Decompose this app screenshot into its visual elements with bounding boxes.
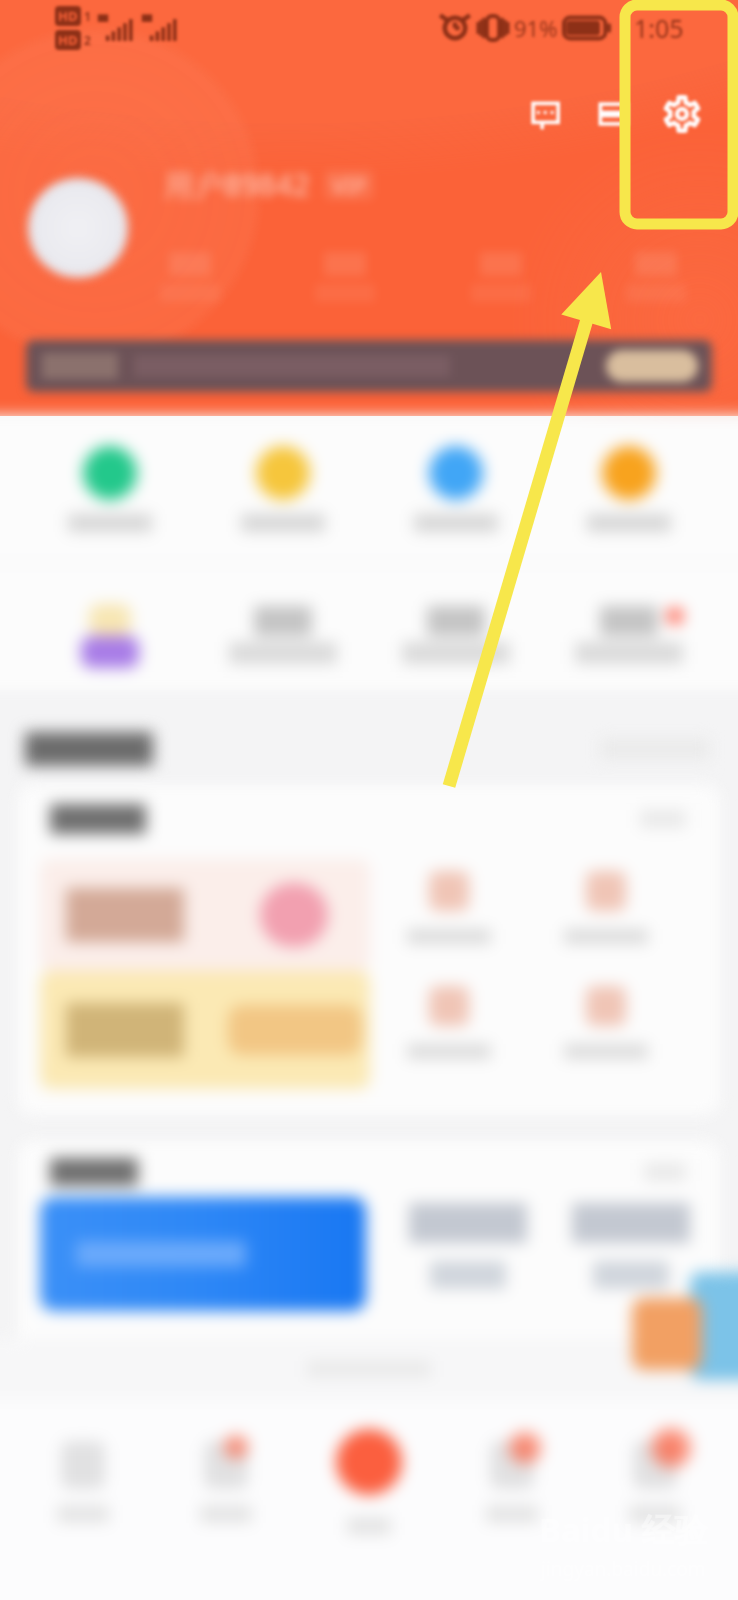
button[interactable] [370,986,527,1059]
button[interactable]: Settings [648,80,716,148]
staticText: 2 [84,32,91,48]
button[interactable] [40,971,370,1089]
staticText: VIP [332,170,366,200]
button[interactable] [196,416,369,562]
button[interactable]: Customer service [632,1298,702,1370]
button[interactable] [542,580,715,690]
button[interactable] [148,252,232,302]
staticText: 1:05 [634,11,684,45]
button[interactable] [459,252,543,302]
button[interactable]: Tab [154,1400,297,1600]
button[interactable]: Orders [580,80,648,148]
button[interactable] [196,580,369,690]
button[interactable]: Assistant [690,1272,738,1380]
button[interactable] [40,859,370,971]
button[interactable] [527,986,684,1059]
button[interactable] [369,416,542,562]
button[interactable] [527,871,684,944]
button[interactable] [23,416,196,562]
staticText: HD [58,31,78,49]
button[interactable] [23,580,196,690]
button[interactable]: Tab [583,1400,726,1600]
staticText: 1 [84,8,91,24]
staticText: 用户89842 [164,164,310,205]
button[interactable] [40,1197,366,1311]
staticText: 91% [514,13,558,43]
button[interactable]: Tab [12,1400,154,1600]
button[interactable] [542,416,715,562]
button[interactable] [28,178,128,278]
staticText: HD [58,7,78,25]
button[interactable] [370,871,527,944]
button[interactable] [26,340,712,392]
button[interactable] [614,252,698,302]
button[interactable]: Add [297,1400,440,1564]
staticText: Baidu 经验 [539,1507,708,1552]
button[interactable]: Tab [440,1400,583,1600]
button[interactable] [303,252,387,302]
button[interactable]: Messages [512,80,580,148]
button[interactable] [369,580,542,690]
